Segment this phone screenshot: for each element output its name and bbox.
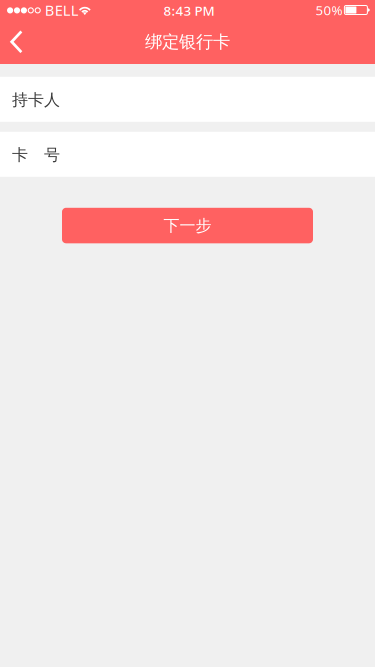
staticText: 下一步 <box>163 216 211 235</box>
staticText: 绑定银行卡 <box>145 31 230 53</box>
button[interactable]: 卡 号 <box>0 132 375 177</box>
button[interactable]: 持卡人 <box>0 77 375 122</box>
staticText: 8:43 PM <box>163 2 214 19</box>
staticText: 50% <box>315 1 342 19</box>
button[interactable]: Back <box>0 20 44 64</box>
staticText: BELL <box>45 0 79 20</box>
staticText: 持卡人 <box>12 90 60 110</box>
button[interactable]: 下一步 <box>62 208 313 243</box>
staticText: 卡 号 <box>12 145 60 165</box>
